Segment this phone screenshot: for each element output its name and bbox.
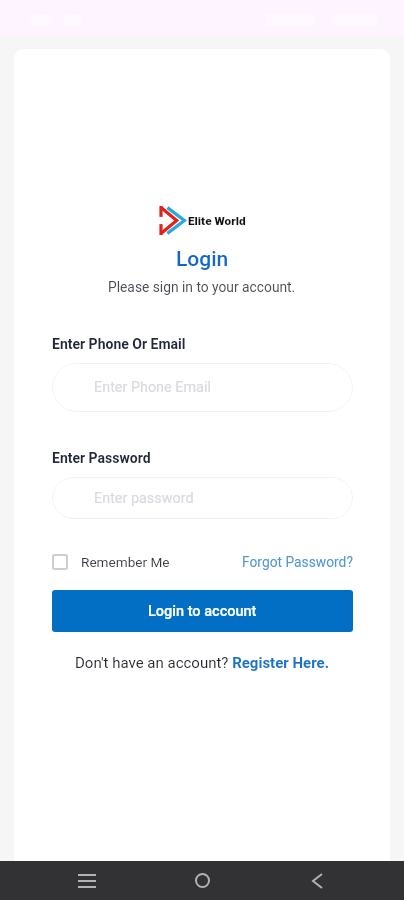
staticText: Login [176, 247, 229, 272]
staticText: Enter password [94, 490, 194, 507]
button[interactable]: Home [145, 861, 260, 900]
staticText: Enter Password [52, 450, 151, 466]
staticText: Enter Phone Or Email [52, 336, 186, 352]
staticText: Forgot Password? [242, 554, 353, 570]
button[interactable]: Don't have an account? Register Here. [75, 654, 330, 672]
staticText: Don't have an account? Register Here. [75, 654, 330, 672]
button[interactable]: Forgot Password? [242, 550, 353, 574]
staticText: Login to account [148, 603, 257, 620]
button[interactable]: Back [260, 861, 375, 900]
staticText: Remember Me [81, 554, 170, 570]
staticText: Elite World [188, 214, 246, 228]
staticText: Please sign in to your account. [108, 279, 296, 295]
button[interactable]: Recent apps [29, 861, 145, 900]
button[interactable]: Remember Me [52, 550, 170, 574]
button[interactable]: Login to account [52, 590, 353, 632]
staticText: Enter Phone Email [94, 379, 211, 396]
button[interactable]: Enter Phone Email [52, 363, 353, 412]
button[interactable]: Enter password [52, 477, 353, 519]
